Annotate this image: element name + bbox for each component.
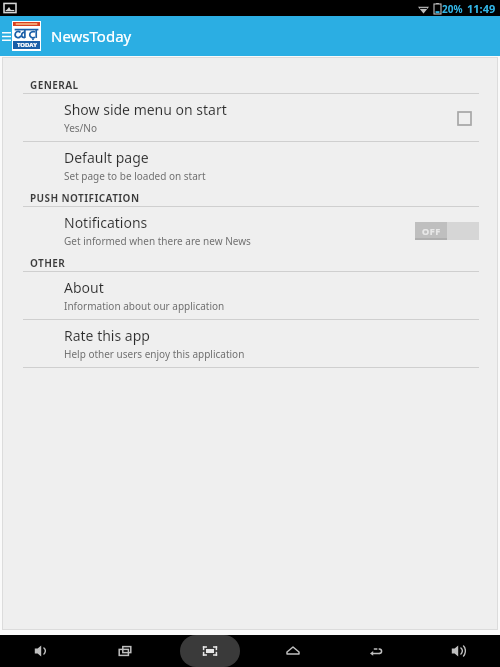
button[interactable]: Home (251, 635, 334, 667)
staticText: OFF (422, 225, 441, 237)
staticText: PUSH NOTIFICATION (30, 191, 140, 205)
staticText: 11:49 (467, 1, 496, 16)
staticText: Set page to be loaded on start (64, 169, 206, 183)
staticText: Get informed when there are new News (64, 234, 251, 248)
staticText: GENERAL (30, 78, 79, 92)
button[interactable]: Default page (3, 142, 497, 189)
staticText: Default page (64, 148, 149, 167)
staticText: TODAY (17, 41, 37, 49)
button[interactable]: Notifications (3, 207, 497, 254)
button[interactable]: Volume up (417, 635, 500, 667)
staticText: 20% (442, 2, 463, 16)
button[interactable]: Volume down (0, 635, 84, 667)
staticText: Help other users enjoy this application (64, 347, 245, 361)
button[interactable]: Show side menu on start (3, 94, 497, 141)
button[interactable]: Back (334, 635, 417, 667)
staticText: About (64, 278, 104, 297)
staticText: Show side menu on start (64, 100, 227, 119)
button[interactable]: Recent apps (84, 635, 168, 667)
button[interactable]: Show side menu on start checkbox (449, 103, 479, 133)
button[interactable]: Notifications toggle, off (415, 220, 479, 242)
staticText: OTHER (30, 256, 66, 270)
staticText: Yes/No (64, 121, 97, 135)
button[interactable]: Rate this app (3, 320, 497, 367)
staticText: Notifications (64, 213, 148, 232)
staticText: Rate this app (64, 326, 150, 345)
button[interactable]: Open navigation drawer (0, 16, 12, 56)
button[interactable]: Screenshot (168, 635, 251, 667)
button[interactable]: About (3, 272, 497, 319)
staticText: Information about our application (64, 299, 225, 313)
staticText: NewsToday (51, 26, 132, 46)
